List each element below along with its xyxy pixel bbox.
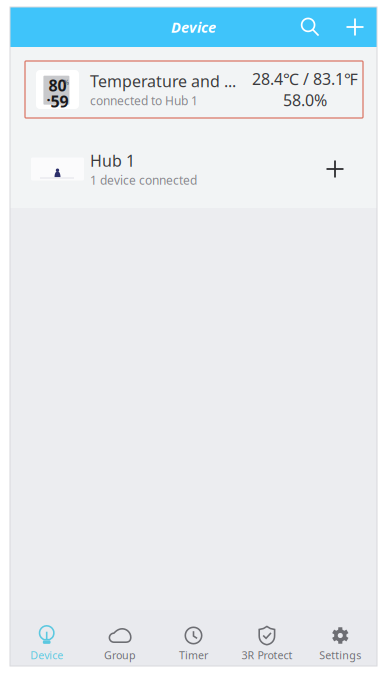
button[interactable]: Group (83, 610, 157, 666)
button[interactable]: 3R Protect (230, 610, 304, 666)
staticText: connected to Hub 1 (90, 93, 198, 109)
staticText: Settings (319, 648, 361, 662)
staticText: Group (104, 648, 136, 662)
button[interactable]: Add device (336, 7, 374, 47)
staticText: Device (171, 17, 216, 37)
button[interactable]: Hub 1 (25, 146, 363, 192)
staticText: 58.0% (283, 89, 327, 111)
staticText: · (46, 90, 50, 109)
button[interactable]: 80 (25, 61, 363, 118)
staticText: Timer (179, 648, 208, 662)
staticText: Device (30, 648, 63, 662)
button[interactable]: Search (291, 7, 329, 47)
button[interactable]: Device (10, 610, 83, 666)
staticText: 1 device connected (90, 172, 197, 188)
staticText: % (63, 78, 69, 87)
button[interactable]: Settings (304, 610, 377, 666)
staticText: 80 (48, 75, 66, 96)
staticText: 59 (50, 91, 68, 112)
staticText: Hub 1 (90, 150, 135, 171)
staticText: 3R Protect (241, 648, 292, 662)
staticText: Temperature and ... (90, 70, 236, 92)
staticText: 28.4℃ / 83.1℉ (252, 68, 358, 89)
button[interactable]: Timer (157, 610, 230, 666)
